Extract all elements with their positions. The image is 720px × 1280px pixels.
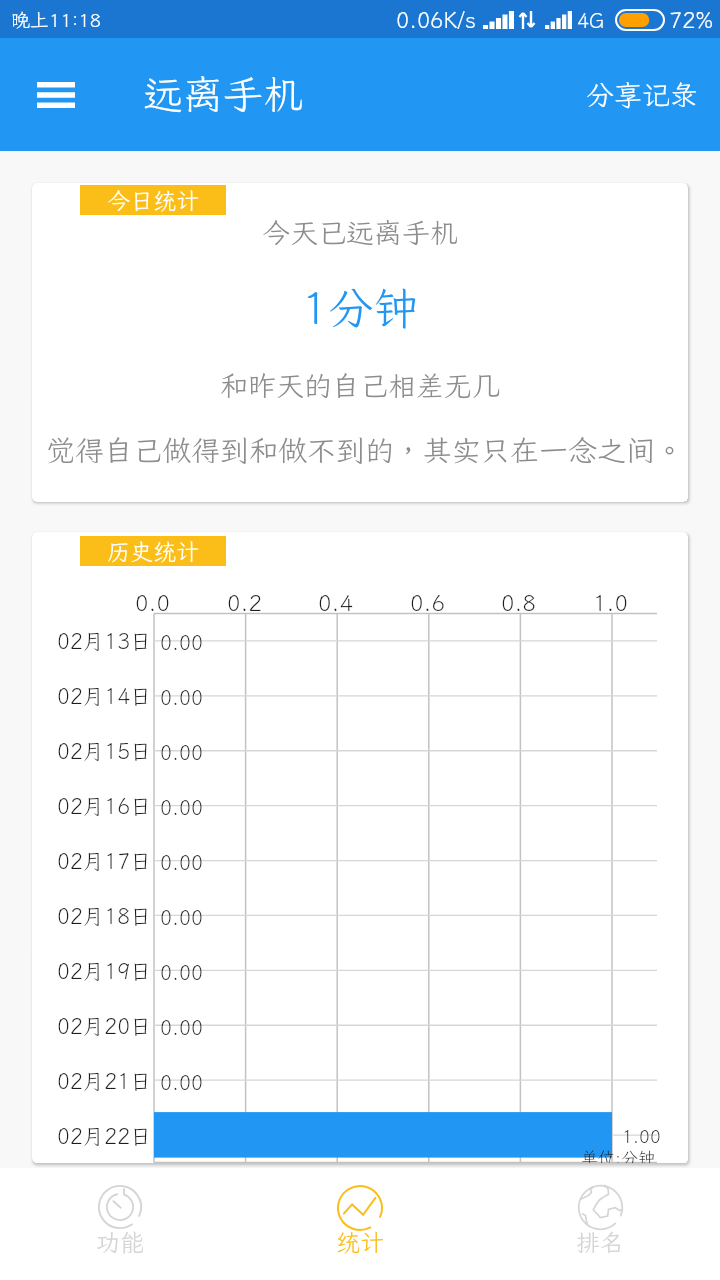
button[interactable]: 功能 — [0, 1168, 240, 1280]
staticText: 0.00 — [160, 904, 203, 930]
staticText: 02月19日 — [57, 957, 152, 985]
button[interactable]: 统计 — [240, 1168, 480, 1280]
staticText: 功能 — [96, 1226, 144, 1258]
staticText: 今日统计 — [107, 185, 199, 215]
staticText: 分享记录 — [586, 76, 699, 113]
staticText: 02月20日 — [57, 1012, 152, 1040]
staticText: 02月13日 — [57, 627, 152, 655]
staticText: 0.2 — [227, 588, 262, 618]
staticText: 02月22日 — [57, 1122, 152, 1150]
staticText: 远离手机 — [143, 68, 303, 121]
staticText: 0.4 — [318, 588, 353, 618]
staticText: 历史统计 — [107, 536, 199, 566]
staticText: 0.00 — [160, 794, 203, 820]
button[interactable]: 分享记录 — [561, 58, 720, 131]
staticText: 0.00 — [160, 629, 203, 655]
staticText: 1.0 — [593, 588, 628, 618]
staticText: 72% — [669, 5, 714, 34]
staticText: 0.00 — [160, 849, 203, 875]
staticText: 1.00 — [622, 1124, 661, 1148]
staticText: 0.00 — [160, 1014, 203, 1040]
staticText: 1分钟 — [32, 278, 688, 337]
staticText: 0.0 — [135, 588, 170, 618]
button[interactable]: 排名 — [480, 1168, 720, 1280]
button[interactable]: Menu — [32, 71, 80, 119]
staticText: 单位:分钟 — [581, 1146, 655, 1163]
staticText: 晚上11:18 — [11, 7, 102, 32]
staticText: 0.00 — [160, 1069, 203, 1095]
staticText: 02月14日 — [57, 682, 152, 710]
staticText: 0.00 — [160, 959, 203, 985]
staticText: 统计 — [336, 1226, 384, 1258]
staticText: 今天已远离手机 — [32, 214, 688, 251]
staticText: 0.8 — [501, 588, 536, 618]
staticText: 0.00 — [160, 684, 203, 710]
staticText: 02月17日 — [57, 847, 152, 875]
staticText: 02月16日 — [57, 792, 152, 820]
staticText: 0.6 — [410, 588, 445, 618]
staticText: 02月21日 — [57, 1067, 152, 1095]
staticText: 和昨天的自己相差无几 — [32, 367, 688, 404]
staticText: 排名 — [576, 1226, 624, 1258]
staticText: 0.06K/s — [396, 5, 477, 34]
staticText: 0.00 — [160, 739, 203, 765]
staticText: 觉得自己做得到和做不到的，其实只在一念之间。 — [37, 431, 688, 469]
staticText: 02月18日 — [57, 902, 152, 930]
staticText: 4G — [577, 7, 605, 33]
staticText: 02月15日 — [57, 737, 152, 765]
